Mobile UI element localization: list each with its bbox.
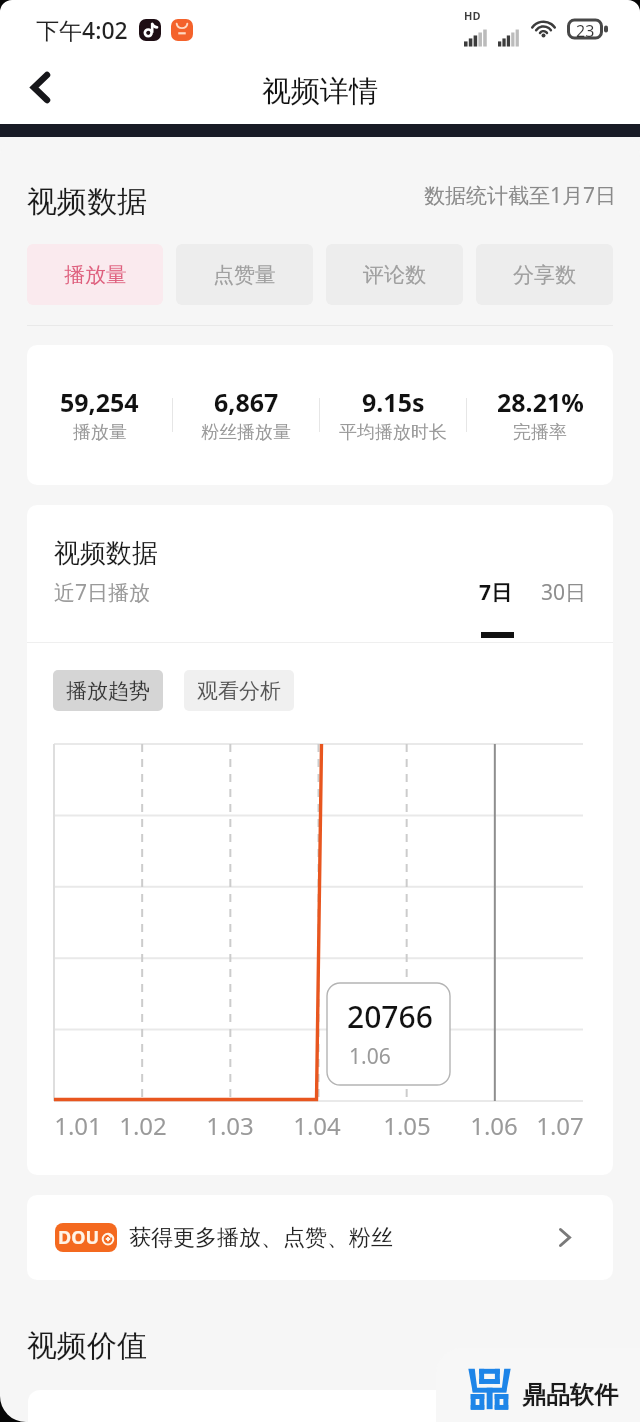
button[interactable]: 分享数 [476, 244, 613, 305]
button[interactable]: 播放趋势 [53, 670, 163, 711]
staticText: 6,867 [214, 385, 279, 419]
staticText: 数据统计截至1月7日 [424, 181, 617, 210]
button[interactable]: Back [10, 57, 70, 117]
staticText: 播放趋势 [66, 678, 150, 704]
button[interactable]: 评论数 [326, 244, 463, 305]
staticText: 视频数据 [54, 537, 158, 570]
staticText: 评论数 [363, 262, 426, 288]
staticText: 视频详情 [262, 73, 378, 110]
staticText: 1.05 [380, 1109, 434, 1142]
staticText: 鼎品软件 [522, 1380, 618, 1410]
staticText: 1.06 [467, 1109, 521, 1142]
staticText: 1.02 [116, 1109, 170, 1142]
staticText: 9.15s [362, 385, 425, 419]
staticText: 播放量 [73, 421, 127, 444]
button[interactable]: 观看分析 [184, 670, 294, 711]
staticText: 点赞量 [213, 262, 276, 288]
staticText: DOU [58, 1225, 100, 1250]
staticText: 1.06 [349, 1042, 391, 1071]
staticText: 30日 [541, 578, 587, 607]
button[interactable]: 播放量 [27, 244, 163, 305]
staticText: 完播率 [513, 421, 567, 444]
staticText: 播放量 [64, 262, 127, 288]
staticText: 近7日播放 [54, 578, 151, 607]
staticText: 7日 [479, 578, 513, 607]
staticText: 1.04 [290, 1109, 344, 1142]
staticText: 1.07 [533, 1109, 587, 1142]
staticText: 获得更多播放、点赞、粉丝 [129, 1224, 393, 1252]
staticText: 28.21% [497, 385, 584, 419]
staticText: 观看分析 [197, 678, 281, 704]
other: More [559, 1228, 571, 1247]
staticText: HD [464, 8, 481, 23]
button[interactable]: 30日 [541, 578, 587, 607]
staticText: 粉丝播放量 [201, 421, 291, 444]
staticText: 59,254 [60, 385, 139, 419]
button[interactable]: 7日 [479, 578, 513, 607]
staticText: 视频数据 [27, 183, 147, 221]
button[interactable]: 点赞量 [176, 244, 313, 305]
button[interactable]: DOU [27, 1195, 613, 1280]
staticText: 分享数 [513, 262, 576, 288]
staticText: 1.01 [51, 1109, 105, 1142]
staticText: 23 [576, 20, 595, 38]
staticText: 平均播放时长 [339, 421, 447, 444]
staticText: 1.03 [203, 1109, 257, 1142]
staticText: 下午4:02 [36, 14, 128, 45]
staticText: 视频价值 [27, 1327, 147, 1365]
staticText: 20766 [347, 996, 433, 1037]
